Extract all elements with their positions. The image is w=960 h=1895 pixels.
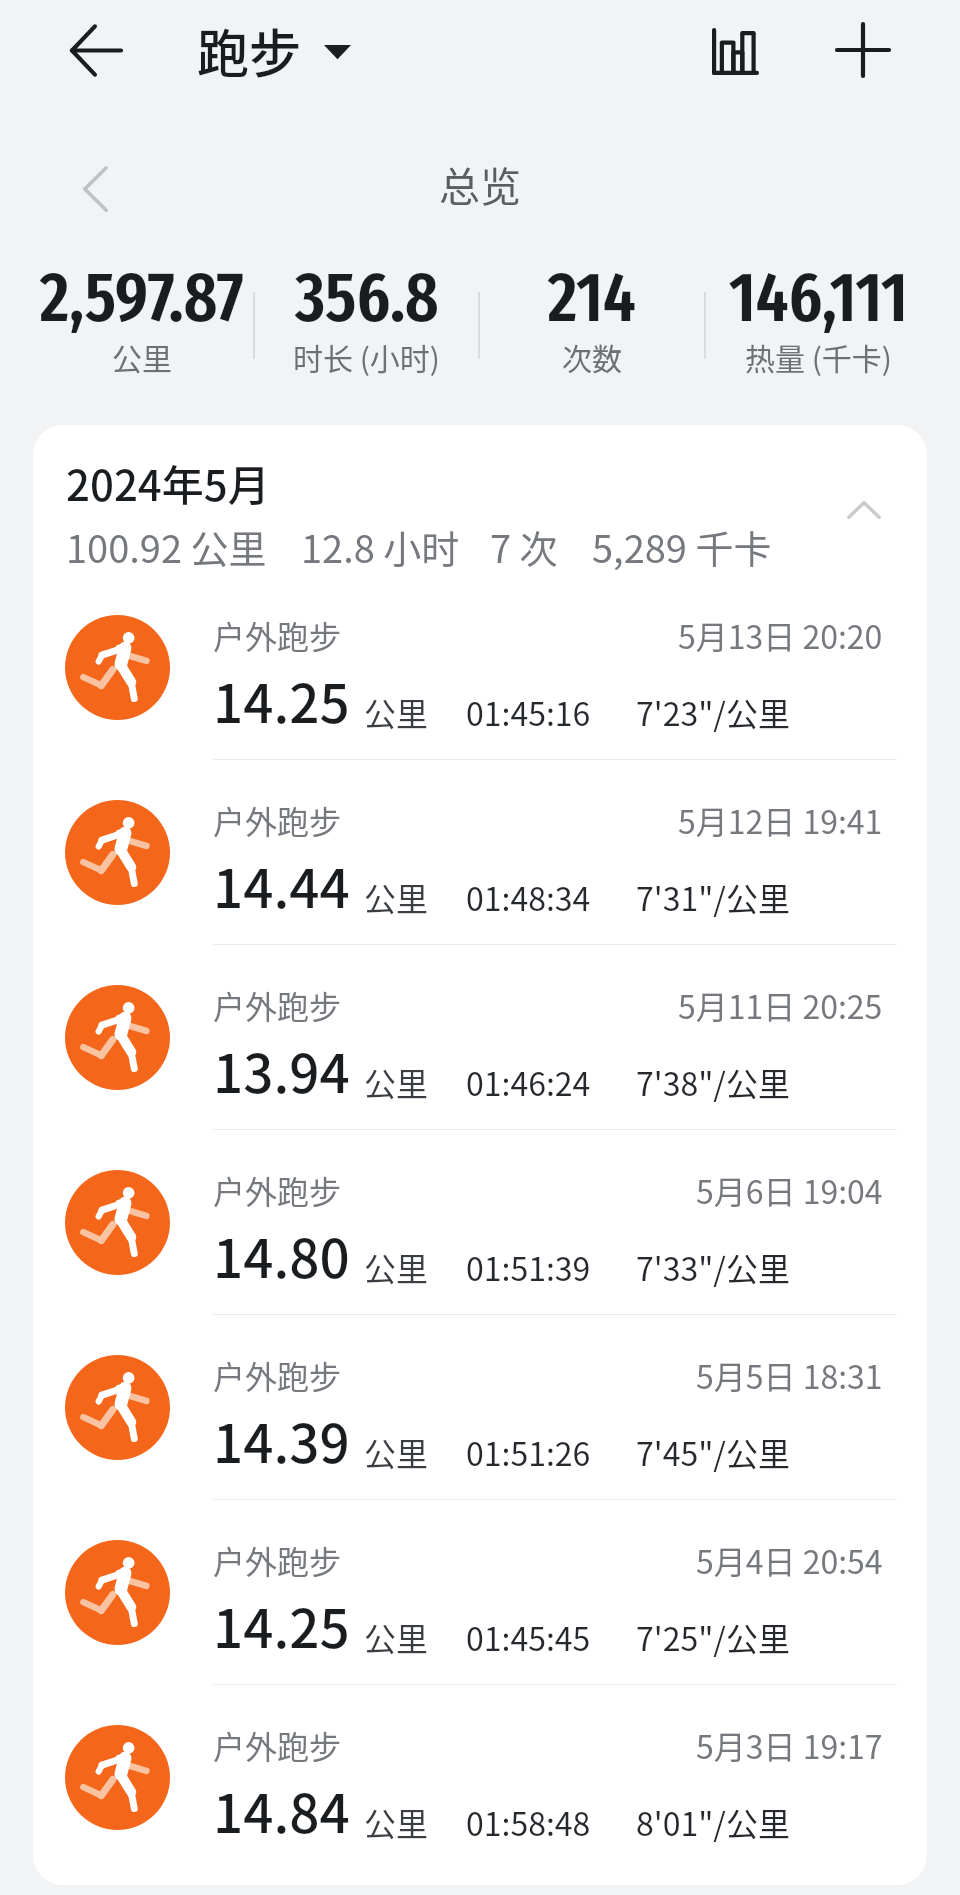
staticText: 14.44 [213,847,350,924]
staticText: 户外跑步 [213,1352,342,1398]
staticText: 5,289 千卡 [592,519,772,574]
staticText: 2024年5月 [66,452,270,513]
staticText: 100.92 公里 [66,519,267,574]
staticText: 跑步 [197,13,302,88]
button[interactable]: 2024年5月 [33,425,927,575]
staticText: 公里 [364,1799,429,1845]
staticText: 户外跑步 [213,1167,342,1213]
staticText: 7'33"/公里 [636,1244,790,1290]
staticText: 7'25"/公里 [636,1614,790,1660]
button[interactable]: 户外跑步 [33,1499,927,1684]
staticText: 01:46:24 [466,1059,591,1105]
staticText: 14.25 [213,1587,350,1664]
staticText: 公里 [364,1244,429,1290]
staticText: 户外跑步 [213,612,342,658]
staticText: 5月4日 20:54 [696,1537,883,1583]
staticText: 7'45"/公里 [636,1429,790,1475]
staticText: 公里 [364,1059,429,1105]
button[interactable]: Statistics [688,4,782,98]
staticText: 5月3日 19:17 [696,1722,883,1768]
button[interactable]: 户外跑步 [33,1129,927,1314]
button[interactable]: Previous month [57,151,133,227]
staticText: 7 次 [490,519,558,574]
staticText: 5月5日 18:31 [696,1352,883,1398]
staticText: 14.84 [213,1772,350,1849]
button[interactable]: Collapse [829,475,899,545]
staticText: 7'23"/公里 [636,689,790,735]
staticText: 户外跑步 [213,1537,342,1583]
staticText: 公里 [364,874,429,920]
button[interactable]: Add [823,10,903,90]
button[interactable]: 跑步 [197,13,351,88]
button[interactable]: 户外跑步 [33,575,927,759]
staticText: 公里 [364,1614,429,1660]
staticText: 13.94 [213,1032,350,1109]
staticText: 户外跑步 [213,797,342,843]
button[interactable]: 户外跑步 [33,1684,927,1869]
staticText: 8'01"/公里 [636,1799,790,1845]
button[interactable]: Back [58,12,134,88]
staticText: 5月13日 20:20 [678,612,883,658]
staticText: 214 [548,256,636,340]
staticText: 01:45:16 [466,689,591,735]
staticText: 总览 [439,154,521,213]
staticText: 5月6日 19:04 [696,1167,883,1213]
staticText: 01:48:34 [466,874,591,920]
staticText: 14.80 [213,1217,350,1294]
button[interactable]: 户外跑步 [33,1314,927,1499]
staticText: 公里 [112,335,172,378]
staticText: 公里 [364,689,429,735]
staticText: 01:51:39 [466,1244,591,1290]
staticText: 01:58:48 [466,1799,591,1845]
staticText: 2,597.87 [40,256,244,340]
staticText: 146,111 [729,256,908,340]
button[interactable]: 户外跑步 [33,759,927,944]
staticText: 14.25 [213,662,350,739]
button[interactable]: 户外跑步 [33,944,927,1129]
staticText: 7'31"/公里 [636,874,790,920]
staticText: 公里 [364,1429,429,1475]
staticText: 次数 [562,335,622,378]
staticText: 356.8 [295,256,439,340]
staticText: 14.39 [213,1402,350,1479]
staticText: 时长 (小时) [293,335,440,378]
staticText: 01:51:26 [466,1429,591,1475]
staticText: 12.8 小时 [301,519,460,574]
staticText: 7'38"/公里 [636,1059,790,1105]
staticText: 01:45:45 [466,1614,591,1660]
staticText: 5月11日 20:25 [678,982,883,1028]
staticText: 热量 (千卡) [745,335,892,378]
staticText: 户外跑步 [213,1722,342,1768]
staticText: 户外跑步 [213,982,342,1028]
staticText: 5月12日 19:41 [678,797,883,843]
